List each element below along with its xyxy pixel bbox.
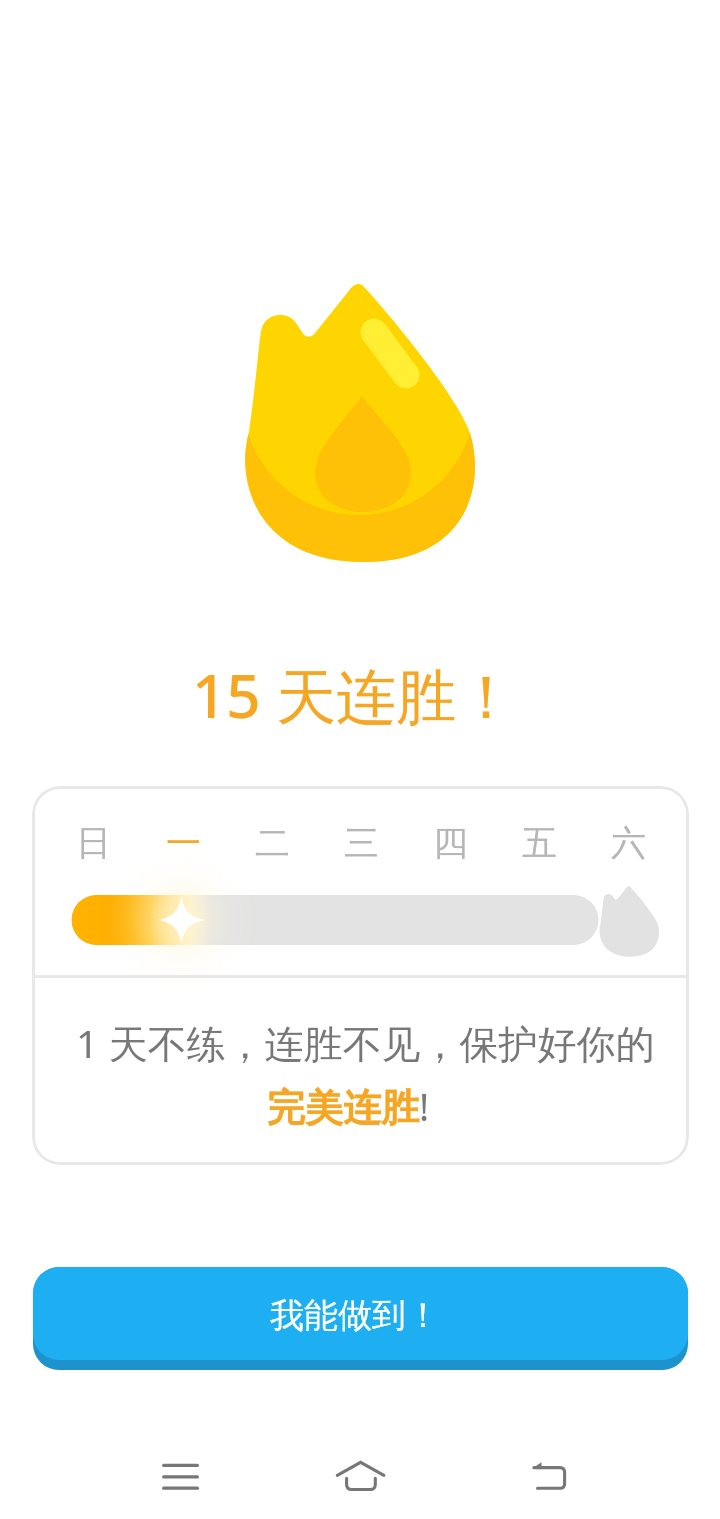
staticText: 四 <box>433 821 468 865</box>
staticText: 一 <box>166 821 201 865</box>
button[interactable]: Home <box>315 1437 405 1519</box>
staticText: 五 <box>522 821 557 865</box>
button[interactable]: 我能做到！ <box>33 1267 688 1370</box>
staticText: 三 <box>344 821 379 865</box>
staticText: 六 <box>611 821 646 865</box>
staticText: 15 天连胜！ <box>192 654 517 736</box>
staticText: 我能做到！ <box>270 1294 440 1337</box>
staticText: 完美连胜! <box>267 1080 430 1132</box>
staticText: 日 <box>76 821 111 865</box>
staticText: 二 <box>255 821 290 865</box>
staticText: 1 天不练，连胜不见，保护好你的 <box>76 1016 655 1069</box>
button[interactable]: Recent apps <box>135 1437 225 1519</box>
button[interactable]: Back <box>495 1437 585 1519</box>
